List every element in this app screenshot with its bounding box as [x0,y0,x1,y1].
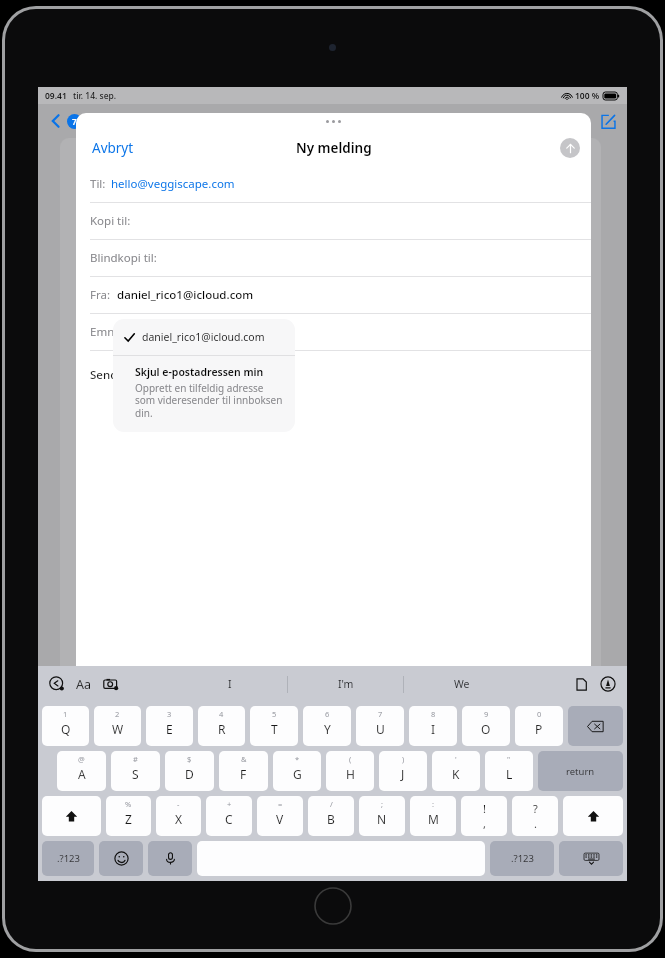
button[interactable]: Emne: [76,314,591,350]
staticText: hello@veggiscape.com [111,176,235,192]
button[interactable]: Send [560,138,580,158]
staticText: Ny melding [296,139,372,157]
button[interactable]: Camera [103,676,119,692]
staticText: J [401,766,405,782]
button[interactable]: % [106,796,151,836]
button[interactable]: return [538,751,623,791]
staticText: + [227,799,232,809]
button[interactable]: : [410,796,456,836]
button[interactable]: 6 [303,706,351,746]
button[interactable]: Backspace [568,706,623,746]
staticText: # [133,754,138,764]
button[interactable]: Shift [563,796,623,836]
button[interactable]: Undo [49,676,65,692]
button[interactable]: .?123 [490,841,554,876]
button[interactable]: * [273,751,321,791]
staticText: : [432,799,435,809]
button[interactable]: Dictate [148,841,192,876]
button[interactable]: ) [379,751,427,791]
staticText: B [327,811,335,827]
staticText: V [276,811,284,827]
staticText: Y [324,721,331,737]
staticText: I'm [338,677,354,691]
button[interactable]: I'm [288,666,403,702]
button[interactable]: Shift [42,796,101,836]
button[interactable]: ' [432,751,480,791]
button[interactable]: 4 [198,706,245,746]
staticText: ( [349,754,352,764]
staticText: , [483,816,486,831]
button[interactable]: 7 [356,706,404,746]
staticText: tir. 14. sep. [73,90,117,102]
button[interactable]: ! [461,796,507,836]
button[interactable]: 8 [409,706,457,746]
button[interactable]: & [219,751,268,791]
button[interactable]: Avbryt [89,136,137,160]
button[interactable]: Blindkopi til: [76,240,591,276]
staticText: 7 [378,709,383,719]
staticText: 7 [72,116,77,127]
staticText: 4 [219,709,224,719]
button[interactable]: / [308,796,354,836]
staticText: ) [402,754,405,764]
staticText: Sendt fra min iPad [90,367,191,383]
staticText: L [506,766,513,782]
button[interactable]: Markup [600,676,616,692]
button[interactable]: # [111,751,160,791]
button[interactable]: 2 [94,706,141,746]
button[interactable]: Skjul e-postadressen min [113,356,295,432]
button[interactable]: 3 [146,706,193,746]
button[interactable]: Documents [574,677,589,692]
button[interactable]: .?123 [42,841,94,876]
staticText: .?123 [57,852,80,865]
staticText: @ [78,754,85,764]
button[interactable]: 1 [42,706,89,746]
staticText: I [431,721,436,737]
staticText: daniel_rico1@icloud.com [142,330,265,344]
button[interactable]: We [404,666,519,702]
staticText: Aa [76,676,92,693]
button[interactable]: ? [512,796,558,836]
button[interactable]: @ [57,751,106,791]
button[interactable]: " [485,751,533,791]
button[interactable]: daniel_rico1@icloud.com [113,319,295,355]
staticText: N [377,811,387,827]
button[interactable]: Aa [76,676,92,693]
staticText: .?123 [511,852,534,865]
staticText: 3 [167,709,172,719]
button[interactable]: Til: [76,166,591,202]
button[interactable]: + [206,796,252,836]
staticText: Emne: [90,324,124,340]
button[interactable]: $ [165,751,214,791]
staticText: S [132,766,139,782]
button[interactable]: Kopi til: [76,203,591,239]
staticText: 9 [484,709,489,719]
staticText: 100 % [575,90,600,102]
staticText: ; [381,799,384,809]
staticText: E [166,721,173,737]
staticText: A [78,766,86,782]
button[interactable]: I [173,666,287,702]
staticText: 0 [537,709,542,719]
staticText: / [330,799,333,809]
button[interactable]: ; [359,796,405,836]
button[interactable]: 0 [515,706,563,746]
staticText: $ [187,754,192,764]
button[interactable]: 9 [462,706,510,746]
staticText: ' [455,754,457,764]
staticText: W [112,721,124,737]
staticText: Q [61,721,71,737]
staticText: ? [533,801,538,816]
button[interactable]: Hide keyboard [559,841,623,876]
button[interactable]: 5 [250,706,298,746]
button[interactable]: - [156,796,201,836]
button[interactable]: = [257,796,303,836]
button[interactable]: Emoji [99,841,143,876]
button[interactable]: Fra: [76,277,591,313]
staticText: K [452,766,460,782]
staticText: Til: [90,176,106,192]
other: Back [48,113,64,129]
button[interactable]: ( [326,751,374,791]
